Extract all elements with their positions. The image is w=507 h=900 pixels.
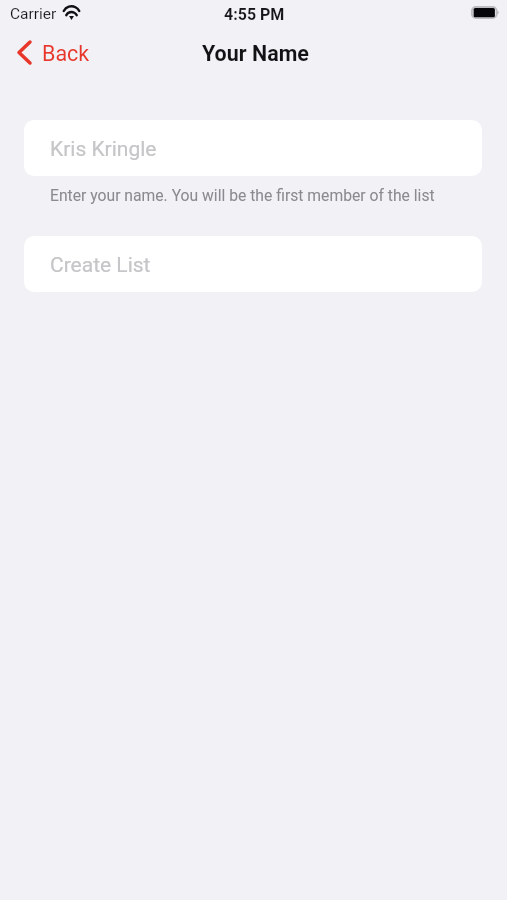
staticText: 4:55 PM xyxy=(224,5,285,24)
staticText: Kris Kringle xyxy=(50,137,157,162)
staticText: Create List xyxy=(50,253,151,278)
staticText: Carrier xyxy=(10,5,57,23)
button[interactable]: Back xyxy=(0,36,100,69)
staticText: Your Name xyxy=(202,41,309,66)
other: Back xyxy=(17,40,32,65)
button[interactable]: Kris Kringle xyxy=(24,120,482,176)
staticText: Enter your name. You will be the first m… xyxy=(50,186,435,204)
button[interactable]: Create List xyxy=(24,236,482,292)
staticText: Back xyxy=(42,41,90,66)
